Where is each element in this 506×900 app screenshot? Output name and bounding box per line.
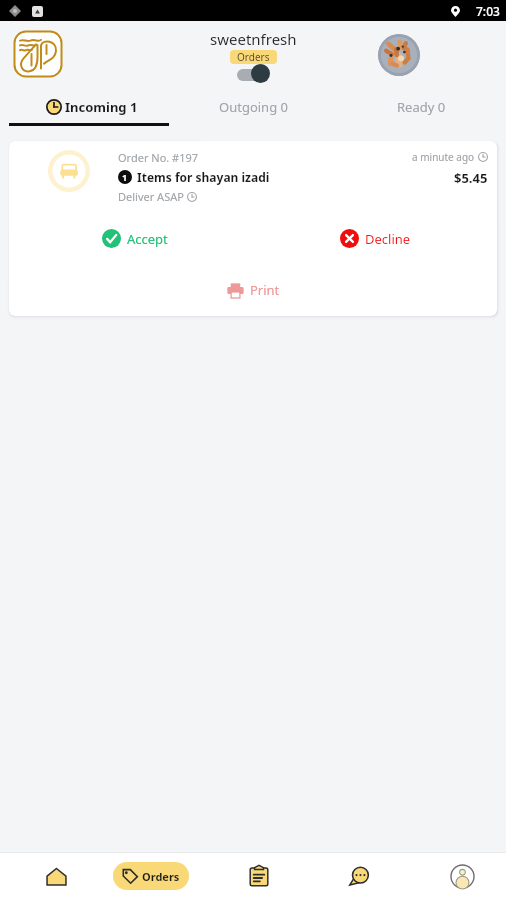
- button[interactable]: Decline: [253, 223, 497, 253]
- staticText: 7:03: [476, 3, 500, 19]
- staticText: Items for shayan izadi: [137, 169, 270, 185]
- staticText: Order No. #197: [118, 150, 199, 165]
- button[interactable]: Print: [9, 275, 497, 305]
- staticText: Incoming 1: [65, 98, 138, 116]
- button[interactable]: Ready 0: [337, 90, 506, 123]
- staticText: Orders: [142, 869, 180, 884]
- staticText: Decline: [365, 230, 411, 248]
- staticText: Orders: [237, 50, 270, 64]
- button[interactable]: Profile picture: [378, 34, 420, 76]
- staticText: Ready 0: [397, 98, 446, 116]
- button[interactable]: Accept: [9, 223, 253, 253]
- staticText: a minute ago: [412, 150, 475, 164]
- button[interactable]: Orders: [113, 862, 189, 890]
- button[interactable]: Outgoing 0: [169, 90, 337, 123]
- button[interactable]: Orders: [230, 50, 277, 64]
- staticText: 1: [122, 171, 128, 183]
- button[interactable]: Messages: [340, 852, 380, 900]
- staticText: Accept: [127, 230, 168, 248]
- staticText: $5.45: [454, 169, 488, 187]
- button[interactable]: Incoming 1: [0, 90, 169, 123]
- staticText: sweetnfresh: [210, 29, 297, 49]
- button[interactable]: Store logo: [13, 30, 63, 78]
- button[interactable]: Home: [36, 852, 76, 900]
- button[interactable]: Toggle open for orders: [236, 64, 272, 83]
- staticText: Deliver ASAP: [118, 189, 184, 204]
- button[interactable]: Account: [442, 852, 482, 900]
- staticText: Print: [250, 281, 280, 299]
- staticText: Outgoing 0: [219, 98, 288, 116]
- button[interactable]: Orders list: [239, 852, 279, 900]
- button[interactable]: Order No. #197: [9, 141, 497, 316]
